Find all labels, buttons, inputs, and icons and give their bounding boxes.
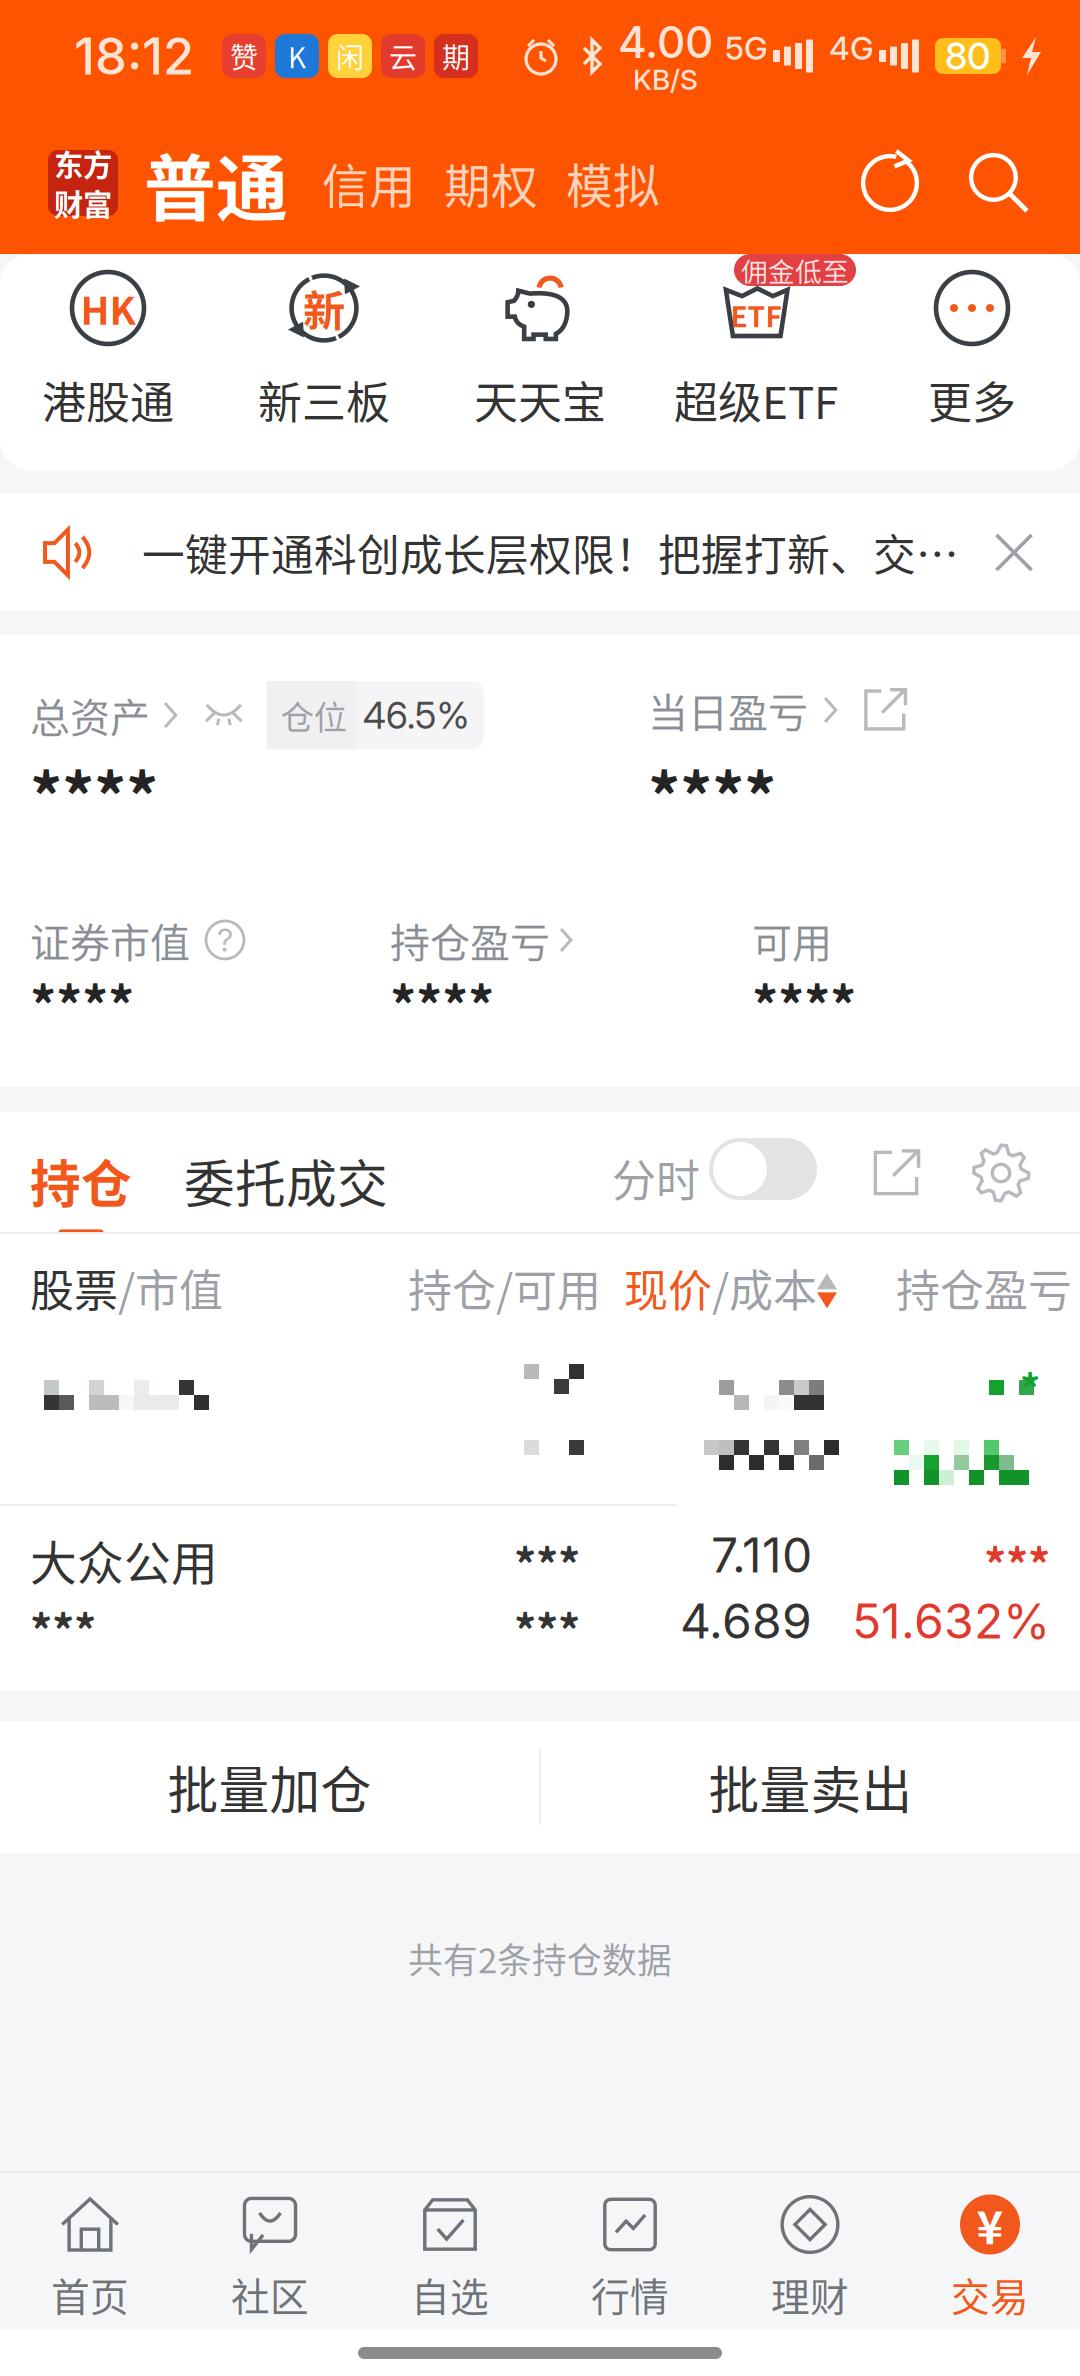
staticText: ¥: [976, 2192, 1003, 2257]
staticText: 5G: [725, 29, 768, 67]
button[interactable]: ¥: [900, 2173, 1080, 2330]
staticText: 51.632%: [852, 1592, 1050, 1650]
staticText: 天天宝: [474, 368, 606, 432]
button[interactable]: 总资产: [30, 686, 179, 744]
staticText: 行情: [591, 2266, 669, 2322]
staticText: 80: [945, 33, 991, 79]
staticText: 7.110: [711, 1526, 812, 1584]
staticText: ***: [514, 1596, 580, 1660]
staticText: 社区: [231, 2266, 309, 2322]
button[interactable]: ETF: [648, 254, 864, 470]
staticText: K: [288, 36, 306, 76]
button[interactable]: Refresh: [858, 151, 922, 215]
staticText: 港股通: [42, 368, 174, 432]
staticText: 新三板: [258, 368, 390, 432]
staticText: 新: [303, 277, 345, 339]
button[interactable]: 理财: [720, 2173, 900, 2330]
staticText: 可用: [752, 911, 832, 969]
button[interactable]: Open detail: [863, 688, 907, 732]
staticText: 超级ETF: [674, 368, 838, 432]
button[interactable]: 批量卖出: [541, 1721, 1080, 1853]
button[interactable]: HK: [0, 254, 216, 470]
button[interactable]: 首页: [0, 2173, 180, 2330]
button[interactable]: 普通: [144, 131, 288, 235]
staticText: HK: [80, 280, 135, 336]
staticText: 云: [389, 36, 417, 76]
staticText: ***: [514, 1530, 580, 1594]
staticText: KB/S: [633, 63, 698, 97]
staticText: 财富: [54, 181, 112, 224]
button[interactable]: 信用: [322, 149, 416, 217]
button[interactable]: 社区: [180, 2173, 360, 2330]
button[interactable]: 批量加仓: [0, 1721, 539, 1853]
button[interactable]: 自选: [360, 2173, 540, 2330]
staticText: 闲: [336, 36, 364, 76]
button[interactable]: 持仓: [30, 1144, 132, 1237]
staticText: 18:12: [74, 25, 194, 87]
staticText: 批量加仓: [167, 1750, 371, 1824]
button[interactable]: 大众公用: [0, 1506, 1080, 1666]
button[interactable]: Intraday chart toggle: [709, 1138, 817, 1200]
button[interactable]: 更多: [864, 254, 1080, 470]
staticText: 批量卖出: [708, 1750, 912, 1824]
button[interactable]: Share: [872, 1149, 920, 1197]
button[interactable]: Show amounts: [205, 704, 243, 726]
staticText: 赞: [230, 36, 258, 76]
staticText: 理财: [771, 2266, 849, 2322]
staticText: 交易: [951, 2266, 1029, 2322]
button[interactable]: 模拟: [566, 149, 660, 217]
staticText: 模拟: [566, 149, 660, 217]
staticText: ****: [30, 965, 134, 1040]
staticText: 期权: [444, 149, 538, 217]
button[interactable]: 当日盈亏: [648, 681, 839, 739]
staticText: 4.689: [680, 1592, 812, 1650]
staticText: 期: [442, 36, 470, 76]
staticText: 首页: [51, 2266, 129, 2322]
staticText: 持仓盈亏: [896, 1256, 1072, 1320]
staticText: 信用: [322, 149, 416, 217]
button[interactable]: 期权: [444, 149, 538, 217]
staticText: /成本: [712, 1256, 817, 1320]
button[interactable]: 天天宝: [432, 254, 648, 470]
button[interactable]: 行情: [540, 2173, 720, 2330]
staticText: 大众公用: [30, 1526, 218, 1594]
staticText: ETF: [730, 295, 781, 335]
staticText: 普通: [144, 131, 288, 235]
staticText: 总资产: [30, 686, 150, 744]
button[interactable]: Search: [968, 152, 1030, 214]
button[interactable]: 持仓盈亏: [390, 911, 690, 969]
staticText: 一键开通科创成长层权限！把握打新、交…: [142, 522, 959, 583]
button[interactable]: 新: [216, 254, 432, 470]
staticText: *: [1020, 1358, 1040, 1416]
staticText: /可用: [496, 1256, 601, 1320]
button[interactable]: 一键开通科创成长层权限！把握打新、交…: [0, 494, 1080, 611]
staticText: ****: [30, 747, 158, 840]
staticText: 仓位: [281, 691, 347, 739]
staticText: 现价: [624, 1256, 712, 1320]
staticText: 股票: [30, 1256, 118, 1320]
staticText: ***: [984, 1530, 1050, 1594]
staticText: 持仓盈亏: [390, 911, 550, 969]
staticText: 分时: [612, 1146, 700, 1210]
staticText: 东方: [54, 142, 112, 184]
staticText: 证券市值: [30, 911, 190, 969]
staticText: 共有2条持仓数据: [408, 1933, 672, 1983]
staticText: 当日盈亏: [648, 681, 808, 739]
staticText: 持仓: [408, 1256, 496, 1320]
staticText: 4G: [829, 29, 874, 67]
staticText: 佣金低至: [741, 251, 849, 289]
staticText: 更多: [928, 368, 1016, 432]
staticText: 委托成交: [184, 1144, 388, 1217]
staticText: 持仓: [30, 1144, 132, 1217]
button[interactable]: 委托成交: [184, 1144, 388, 1217]
staticText: 4.00: [618, 15, 713, 69]
staticText: /市值: [118, 1256, 223, 1320]
staticText: ***: [30, 1596, 96, 1660]
staticText: ****: [752, 965, 856, 1040]
staticText: 自选: [411, 2266, 489, 2322]
staticText: ?: [217, 921, 233, 959]
staticText: 46.5%: [363, 692, 470, 738]
button[interactable]: Settings: [972, 1144, 1030, 1202]
staticText: ****: [648, 747, 776, 840]
staticText: ****: [390, 965, 494, 1040]
